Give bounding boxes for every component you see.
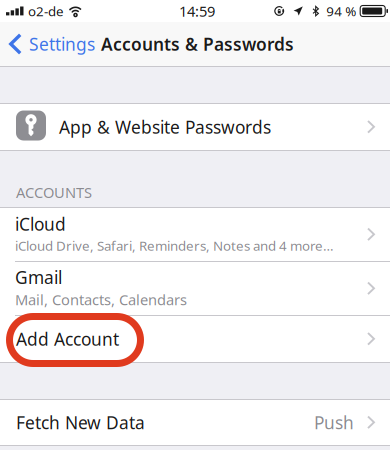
- button[interactable]: Settings: [0, 26, 95, 61]
- staticText: App & Website Passwords: [59, 115, 271, 138]
- staticText: Settings: [29, 32, 95, 55]
- button[interactable]: Add Account: [0, 316, 390, 362]
- button[interactable]: Fetch New Data: [0, 400, 390, 445]
- staticText: iCloud Drive, Safari, Reminders, Notes a…: [15, 237, 334, 254]
- staticText: 94 %: [326, 2, 356, 20]
- button[interactable]: Gmail: [0, 262, 390, 315]
- staticText: iCloud: [15, 213, 66, 236]
- staticText: Push: [314, 411, 354, 434]
- staticText: 14:59: [179, 1, 215, 21]
- staticText: ACCOUNTS: [16, 182, 92, 202]
- staticText: Accounts & Passwords: [101, 32, 294, 55]
- staticText: Gmail: [15, 266, 62, 289]
- staticText: o2-de: [28, 2, 64, 20]
- button[interactable]: iCloud: [0, 208, 390, 261]
- staticText: Add Account: [16, 327, 119, 350]
- staticText: Mail, Contacts, Calendars: [15, 290, 187, 309]
- button[interactable]: App & Website Passwords: [0, 104, 390, 150]
- staticText: Fetch New Data: [16, 411, 145, 434]
